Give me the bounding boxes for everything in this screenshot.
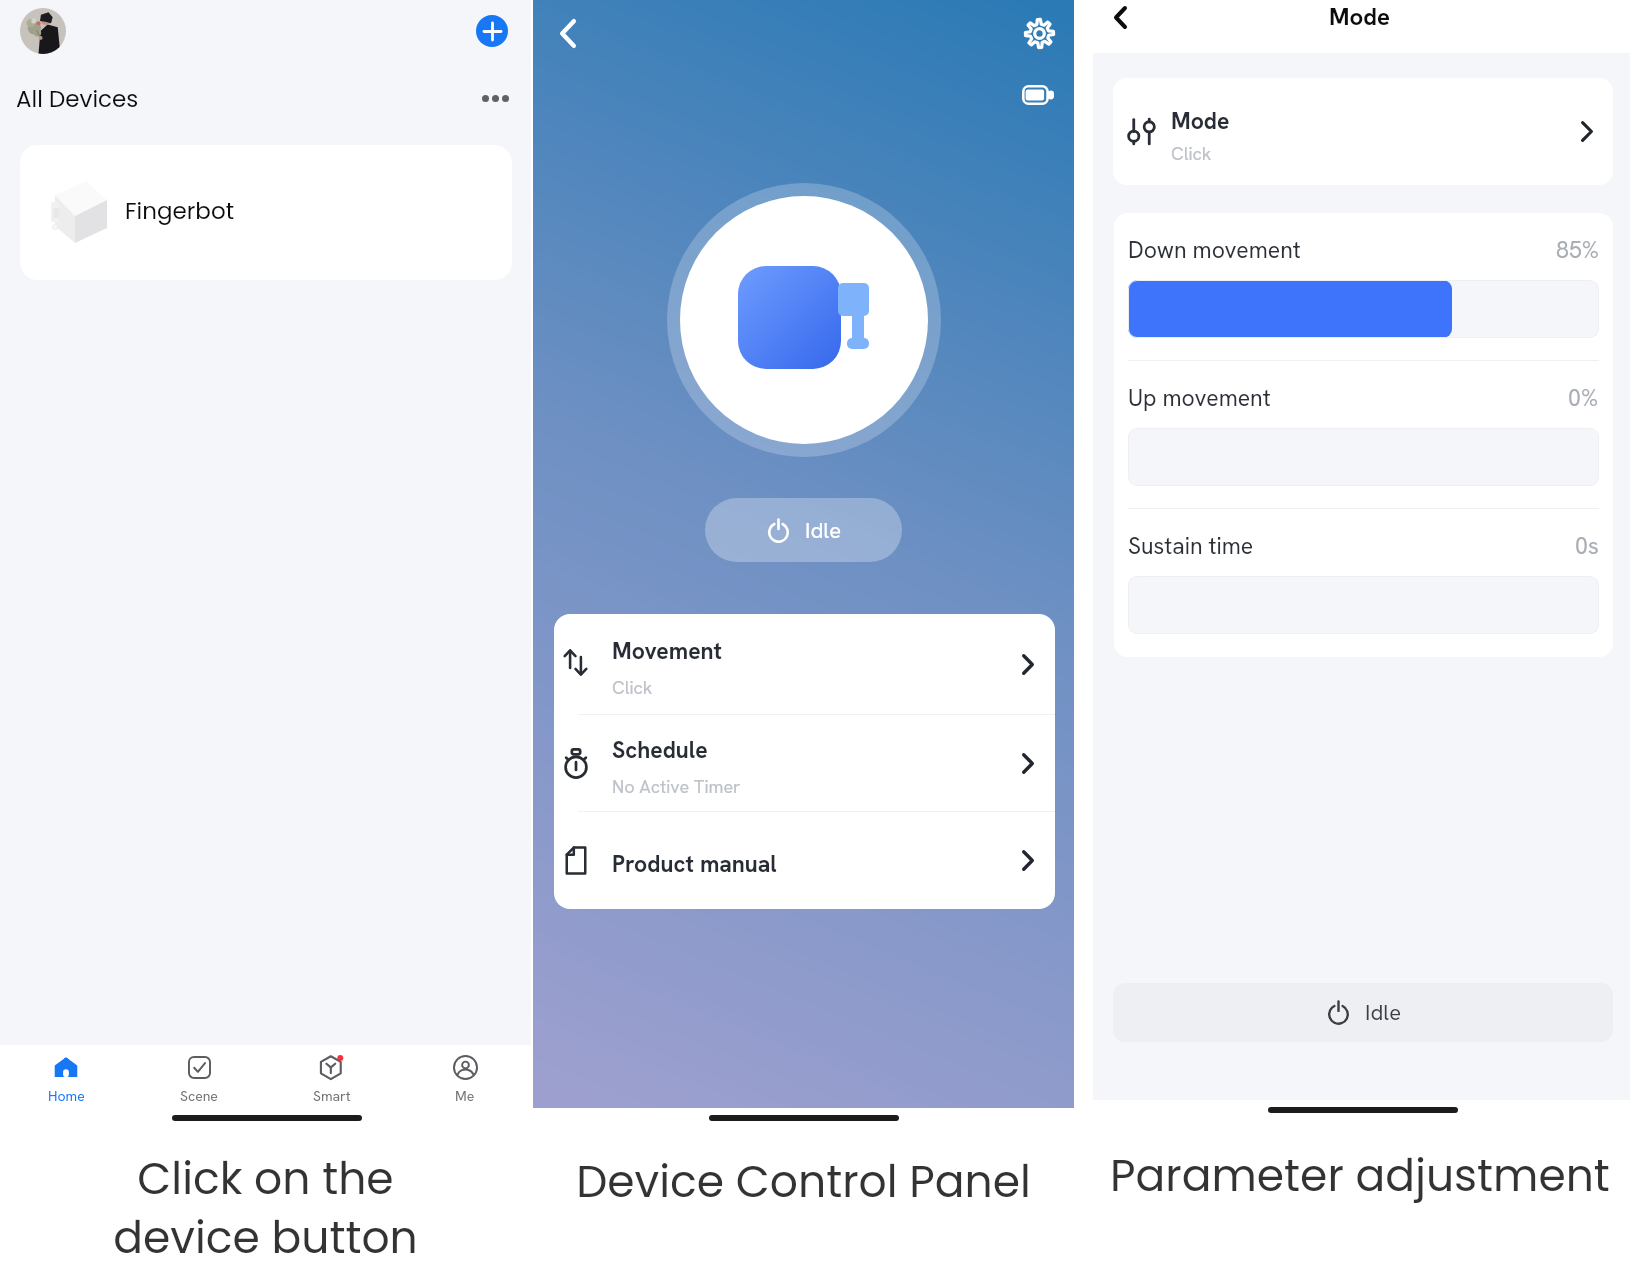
staticText: 0s [1575,531,1599,561]
button[interactable]: Mode [1113,78,1613,185]
staticText: Mode [1329,1,1391,32]
button[interactable]: Schedule [554,715,1055,811]
staticText: No Active Timer [612,775,741,798]
staticText: Schedule [612,735,708,765]
button[interactable]: Product manual [554,812,1055,909]
button[interactable]: Home [0,1045,132,1115]
button[interactable]: Idle [705,498,902,562]
staticText: Product manual [612,849,777,879]
staticText: Sustain time [1128,531,1254,561]
staticText: Idle [805,516,842,545]
staticText: 85% [1556,235,1599,265]
button[interactable] [1128,280,1599,338]
staticText: Me [455,1087,475,1105]
staticText: Down movement [1128,235,1301,265]
staticText: Home [48,1087,85,1105]
button[interactable]: Smart [265,1045,398,1115]
staticText: Device Control Panel [533,1151,1074,1213]
button[interactable]: Back [546,11,590,55]
button[interactable]: Settings [1017,11,1061,55]
staticText: Click [612,676,653,699]
staticText: Smart [313,1087,351,1105]
staticText: Parameter adjustment [1074,1145,1646,1207]
button[interactable]: Back [1100,0,1140,37]
button[interactable]: Fingerbot device [680,196,928,444]
button[interactable]: Battery level [1016,75,1060,115]
staticText: 0% [1568,383,1599,413]
staticText: Idle [1365,998,1402,1027]
staticText: Up movement [1128,383,1271,413]
staticText: Mode [1171,106,1230,136]
staticText: Scene [180,1087,218,1105]
button[interactable]: Idle [1113,983,1613,1042]
staticText: Click [1171,142,1212,165]
button[interactable]: Scene [132,1045,265,1115]
staticText: Movement [612,636,723,666]
staticText: Click on the device button [0,1148,531,1269]
button[interactable]: Profile [20,8,66,54]
button[interactable]: Movement [554,614,1055,714]
button[interactable]: Add device [476,15,508,47]
button[interactable]: Fingerbot [20,145,512,280]
staticText: Fingerbot [125,195,234,227]
staticText: All Devices [16,83,139,115]
button[interactable]: More options [477,82,513,114]
button[interactable]: Me [398,1045,531,1115]
